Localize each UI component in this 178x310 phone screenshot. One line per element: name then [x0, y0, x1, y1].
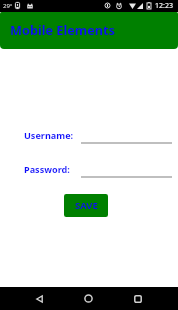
button[interactable] [81, 168, 172, 178]
staticText: 29° [3, 2, 13, 10]
button[interactable] [81, 134, 172, 144]
staticText: Username: [24, 129, 74, 141]
button[interactable]: SAVE [64, 194, 108, 217]
staticText: Mobile Elements [10, 21, 115, 38]
staticText: 12:23 [155, 1, 173, 11]
button[interactable]: Recent apps [121, 288, 154, 309]
button[interactable]: Back [23, 288, 56, 309]
staticText: Password: [24, 163, 70, 175]
staticText: SAVE [75, 199, 98, 212]
button[interactable]: Home [72, 288, 105, 309]
